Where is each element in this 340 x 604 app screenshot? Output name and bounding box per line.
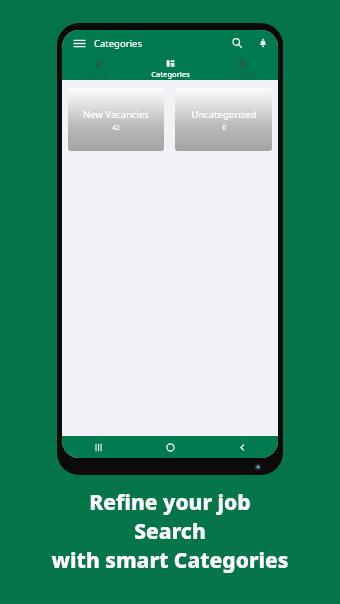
button[interactable]: Home [62,56,134,79]
staticText: Uncategorized [191,108,257,121]
button[interactable]: Categories [134,56,206,79]
staticText: 42 [112,123,120,132]
button[interactable]: Home [134,436,206,458]
button[interactable]: Recents [62,436,134,458]
button[interactable]: Settings [206,56,278,79]
button[interactable]: Search [229,35,245,51]
button[interactable]: Notifications [255,35,271,51]
button[interactable]: Back [206,436,278,458]
button[interactable]: Menu [70,34,88,52]
staticText: Refine your job [0,488,340,517]
button[interactable]: Uncategorized [175,88,272,151]
staticText: Categories [94,37,142,50]
staticText: Settings [228,69,257,79]
staticText: with smart Categories [0,546,340,575]
button[interactable]: New Vacancies [68,88,164,151]
staticText: Home [87,69,109,79]
staticText: Categories [151,69,190,79]
staticText: New Vacancies [83,108,149,121]
staticText: Search [0,517,340,546]
staticText: 0 [222,123,226,132]
